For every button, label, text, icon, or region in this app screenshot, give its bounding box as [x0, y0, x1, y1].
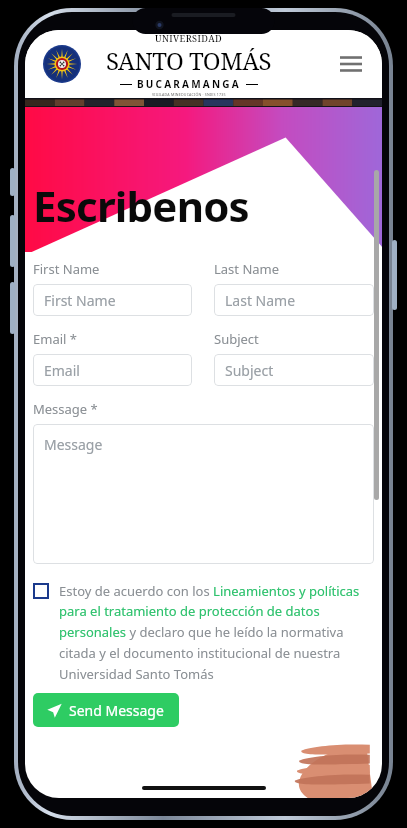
button[interactable]: Last Name	[214, 284, 374, 316]
staticText: Message	[44, 435, 103, 454]
staticText: Last Name	[225, 291, 296, 310]
staticText: Email	[44, 361, 80, 380]
staticText: Subject	[225, 361, 274, 380]
staticText: First Name	[33, 260, 100, 278]
button[interactable]: Menu	[334, 47, 368, 81]
staticText: VIGILADA MINEDUCACIÓN · SNIES 1735	[152, 92, 226, 97]
button[interactable]: Email	[33, 354, 192, 386]
staticText: Email *	[33, 330, 77, 348]
staticText: First Name	[44, 291, 116, 310]
staticText: Escribenos	[33, 177, 249, 234]
button[interactable]: Message	[33, 424, 374, 564]
staticText: Estoy de acuerdo con los Lineamientos y …	[59, 582, 374, 683]
staticText: Last Name	[214, 260, 280, 278]
staticText: Subject	[214, 330, 259, 348]
button[interactable]: Send Message	[33, 693, 179, 727]
staticText: BUCARAMANGA	[137, 77, 241, 91]
button[interactable]: Estoy de acuerdo con los Lineamientos y …	[33, 582, 374, 683]
staticText: Send Message	[69, 701, 164, 720]
staticText: Message *	[33, 400, 98, 418]
button[interactable]: First Name	[33, 284, 192, 316]
button[interactable]: Subject	[214, 354, 374, 386]
staticText: SANTO TOMÁS	[106, 44, 272, 77]
staticText: UNIVERSIDAD	[155, 32, 223, 44]
